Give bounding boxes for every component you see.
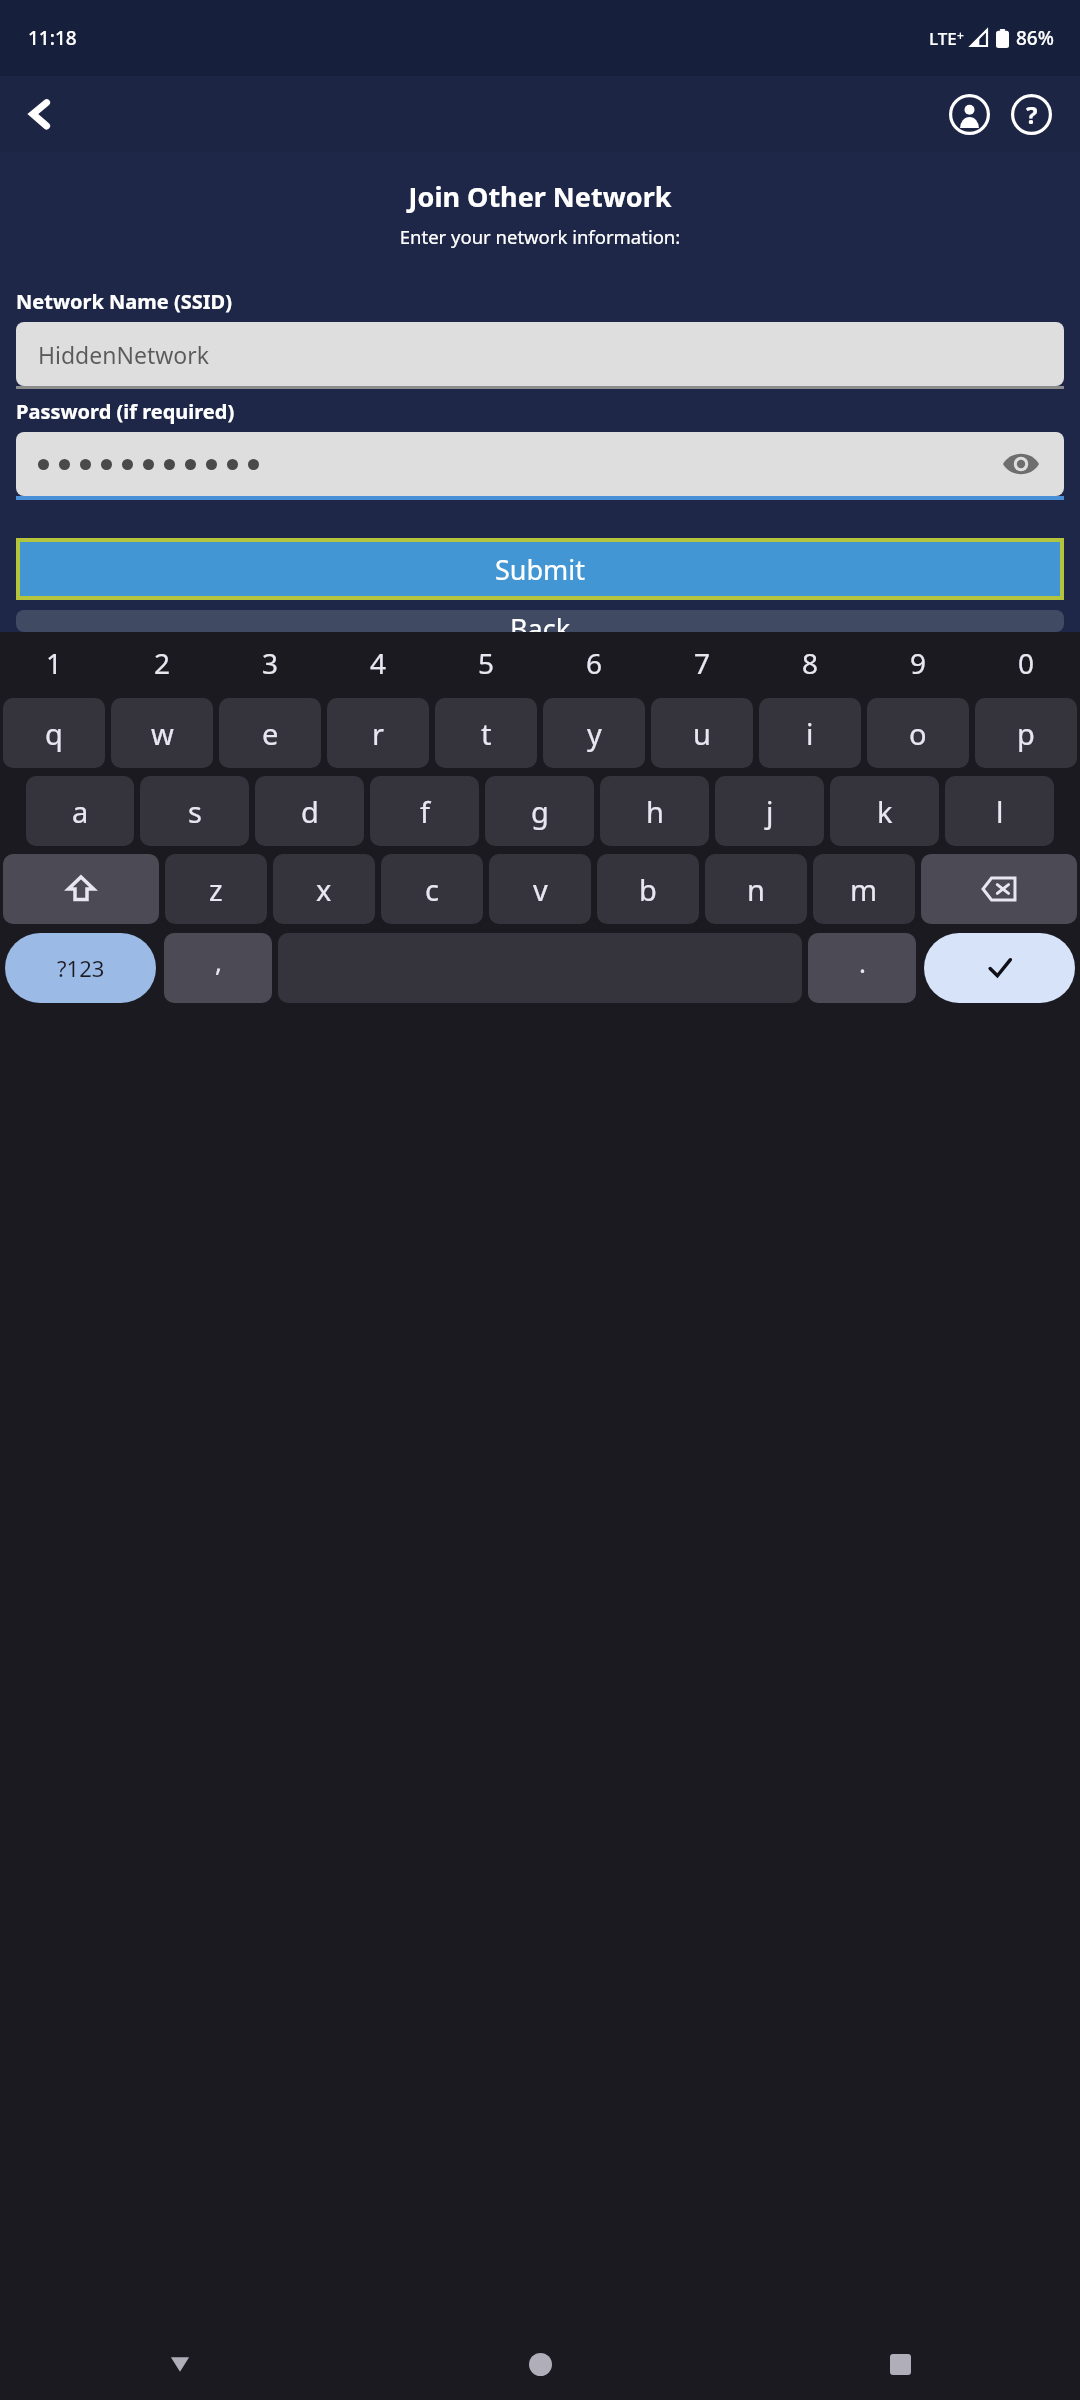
- button[interactable]: Account: [944, 89, 994, 139]
- staticText: d: [301, 792, 319, 831]
- button[interactable]: Show password: [16, 432, 1064, 496]
- button[interactable]: a: [26, 776, 134, 846]
- button[interactable]: q: [3, 698, 105, 768]
- button[interactable]: p: [975, 698, 1077, 768]
- button[interactable]: 7: [648, 632, 756, 694]
- button[interactable]: 6: [540, 632, 648, 694]
- button[interactable]: k: [830, 776, 939, 846]
- button[interactable]: c: [381, 854, 483, 924]
- staticText: g: [531, 792, 549, 831]
- button[interactable]: Back: [14, 88, 66, 140]
- staticText: Network Name (SSID): [16, 288, 232, 315]
- button[interactable]: 2: [108, 632, 216, 694]
- staticText: 6: [586, 644, 603, 682]
- staticText: 3: [262, 644, 279, 682]
- staticText: b: [639, 870, 657, 909]
- staticText: a: [72, 792, 89, 831]
- staticText: .: [859, 945, 866, 980]
- staticText: 2: [154, 644, 171, 682]
- staticText: v: [533, 870, 548, 909]
- staticText: Enter your network information:: [0, 224, 1080, 249]
- button[interactable]: Help: [1006, 89, 1056, 139]
- staticText: 86%: [1016, 25, 1054, 51]
- button[interactable]: Back: [0, 2328, 360, 2400]
- button[interactable]: Enter: [924, 933, 1075, 1003]
- button[interactable]: i: [759, 698, 861, 768]
- staticText: z: [209, 870, 223, 909]
- button[interactable]: j: [715, 776, 824, 846]
- button[interactable]: w: [111, 698, 213, 768]
- button[interactable]: Shift: [3, 854, 159, 924]
- button[interactable]: t: [435, 698, 537, 768]
- button[interactable]: ,: [164, 933, 272, 1003]
- button[interactable]: Back: [16, 610, 1064, 632]
- button[interactable]: ?123: [5, 933, 156, 1003]
- button[interactable]: 8: [756, 632, 864, 694]
- staticText: 8: [802, 644, 819, 682]
- staticText: Submit: [495, 551, 586, 588]
- staticText: 4: [370, 644, 387, 682]
- button[interactable]: s: [140, 776, 249, 846]
- staticText: w: [151, 714, 174, 753]
- button[interactable]: 0: [972, 632, 1080, 694]
- staticText: Password (if required): [16, 398, 235, 425]
- button[interactable]: o: [867, 698, 969, 768]
- staticText: l: [996, 792, 1004, 831]
- staticText: k: [877, 792, 893, 831]
- staticText: 9: [910, 644, 927, 682]
- staticText: h: [646, 792, 664, 831]
- staticText: HiddenNetwork: [38, 339, 209, 370]
- button[interactable]: 4: [324, 632, 432, 694]
- button[interactable]: f: [370, 776, 479, 846]
- staticText: i: [806, 714, 814, 753]
- staticText: t: [481, 714, 492, 753]
- button[interactable]: r: [327, 698, 429, 768]
- button[interactable]: 1: [0, 632, 108, 694]
- staticText: 1: [46, 644, 63, 682]
- staticText: e: [262, 714, 279, 753]
- button[interactable]: h: [600, 776, 709, 846]
- button[interactable]: 9: [864, 632, 972, 694]
- button[interactable]: Home: [360, 2328, 720, 2400]
- staticText: 0: [1018, 644, 1035, 682]
- staticText: m: [850, 870, 878, 909]
- staticText: Join Other Network: [0, 178, 1080, 215]
- button[interactable]: n: [705, 854, 807, 924]
- button[interactable]: y: [543, 698, 645, 768]
- button[interactable]: z: [165, 854, 267, 924]
- button[interactable]: e: [219, 698, 321, 768]
- staticText: q: [45, 714, 63, 753]
- button[interactable]: Recents: [720, 2328, 1080, 2400]
- button[interactable]: l: [945, 776, 1054, 846]
- button[interactable]: Show password: [1000, 443, 1042, 485]
- staticText: r: [372, 714, 384, 753]
- button[interactable]: d: [255, 776, 364, 846]
- staticText: s: [188, 792, 202, 831]
- staticText: u: [693, 714, 711, 753]
- staticText: ,: [215, 944, 222, 979]
- button[interactable]: g: [485, 776, 594, 846]
- button[interactable]: 5: [432, 632, 540, 694]
- button[interactable]: 3: [216, 632, 324, 694]
- staticText: x: [316, 870, 332, 909]
- staticText: 11:18: [28, 25, 77, 51]
- staticText: ?123: [57, 953, 105, 983]
- staticText: 7: [694, 644, 711, 682]
- button[interactable]: x: [273, 854, 375, 924]
- button[interactable]: u: [651, 698, 753, 768]
- button[interactable]: v: [489, 854, 591, 924]
- staticText: LTE: [929, 27, 957, 50]
- staticText: y: [587, 714, 602, 753]
- staticText: n: [747, 870, 765, 909]
- staticText: c: [425, 870, 439, 909]
- button[interactable]: .: [808, 933, 916, 1003]
- staticText: j: [766, 792, 774, 831]
- button[interactable]: m: [813, 854, 915, 924]
- button[interactable]: Submit: [16, 538, 1064, 600]
- staticText: Back: [510, 610, 571, 632]
- button[interactable]: HiddenNetwork: [16, 322, 1064, 386]
- button[interactable]: b: [597, 854, 699, 924]
- staticText: +: [957, 27, 964, 43]
- button[interactable]: Backspace: [921, 854, 1077, 924]
